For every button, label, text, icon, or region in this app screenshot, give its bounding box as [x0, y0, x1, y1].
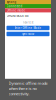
staticText: Sync Now: [22, 32, 34, 36]
staticText: Connected: [6, 4, 22, 8]
staticText: OFFLINE MODE TEST: [6, 14, 28, 18]
staticText: Enter Offline Mode: [14, 26, 41, 30]
button[interactable]: Enter Offline Mode: [6, 26, 49, 30]
staticText: Dynamic offline mode when there is no co…: [8, 80, 47, 96]
staticText: Offline mode: [6, 9, 25, 12]
staticText: new test: [22, 21, 33, 24]
staticText: Syncing: [6, 0, 16, 4]
button[interactable]: Sync Now: [6, 32, 49, 36]
